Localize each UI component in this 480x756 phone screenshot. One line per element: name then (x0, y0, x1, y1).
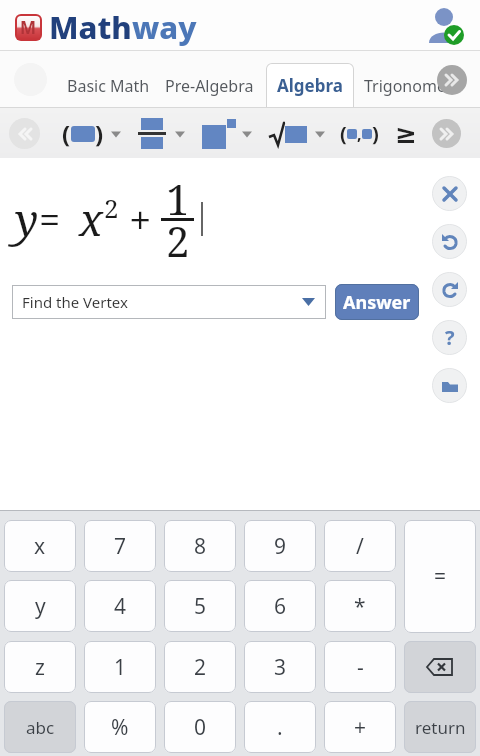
button[interactable]: 4 (84, 580, 156, 632)
staticText: y (35, 592, 46, 621)
staticText: 2 (104, 190, 119, 225)
button[interactable]: 7 (84, 520, 156, 572)
button[interactable] (432, 368, 467, 403)
button[interactable]: y (4, 580, 76, 632)
staticText: / (356, 532, 364, 561)
button[interactable]: / (324, 520, 396, 572)
button[interactable] (202, 119, 236, 149)
button[interactable] (404, 641, 476, 693)
button[interactable] (432, 224, 467, 259)
staticText: Basic Math (67, 75, 150, 97)
staticText: = (434, 562, 447, 591)
staticText: 5 (194, 592, 207, 621)
button[interactable]: = (404, 520, 476, 633)
staticText: Answer (343, 290, 411, 315)
staticText: x (79, 189, 104, 249)
button[interactable]: Find the Vertex (12, 285, 326, 319)
button[interactable]: - (324, 641, 396, 693)
staticText: y (15, 189, 39, 249)
staticText: . (277, 713, 283, 742)
button[interactable]: + (324, 701, 396, 753)
staticText: + (129, 192, 152, 246)
staticText: 2 (194, 653, 207, 682)
button[interactable]: 5 (164, 580, 236, 632)
staticText: z (35, 653, 45, 682)
button[interactable]: Pre-Algebra (165, 63, 254, 108)
staticText: 8 (194, 532, 207, 561)
staticText: Algebra (277, 74, 343, 97)
button[interactable]: 1 (84, 641, 156, 693)
staticText: Trigonometi (364, 75, 456, 97)
button[interactable] (269, 121, 307, 147)
staticText: ( (340, 120, 347, 147)
staticText: 4 (114, 592, 127, 621)
button[interactable]: x (4, 520, 76, 572)
button[interactable] (432, 272, 467, 307)
button[interactable] (138, 118, 166, 149)
staticText: way (132, 6, 197, 48)
staticText: ) (95, 117, 104, 150)
staticText: abc (26, 716, 55, 739)
staticText: M (20, 16, 37, 39)
staticText: ) (372, 120, 379, 147)
button[interactable]: M (15, 14, 42, 41)
button[interactable]: ≥ (395, 119, 417, 149)
staticText: 3 (274, 653, 287, 682)
staticText: return (415, 716, 466, 739)
staticText: Pre-Algebra (165, 75, 254, 97)
staticText: 0 (194, 713, 207, 742)
button[interactable]: Algebra (266, 63, 354, 108)
button[interactable]: Trigonometi (364, 63, 456, 108)
button[interactable]: z (4, 641, 76, 693)
staticText: 1 (166, 170, 190, 227)
staticText: % (111, 713, 129, 742)
staticText: * (354, 592, 366, 621)
staticText: 9 (274, 532, 287, 561)
button[interactable] (432, 119, 461, 148)
staticText: = (39, 193, 61, 245)
staticText: 6 (274, 592, 287, 621)
staticText: ? (445, 324, 455, 351)
button[interactable]: 0 (164, 701, 236, 753)
staticText: Math (49, 6, 132, 48)
button[interactable]: ? (432, 320, 467, 355)
button[interactable]: abc (4, 701, 76, 753)
staticText: Find the Vertex (22, 292, 128, 312)
button[interactable]: return (404, 701, 476, 753)
staticText: ( (62, 117, 71, 150)
staticText: + (354, 713, 367, 742)
staticText: x (34, 532, 46, 561)
staticText: - (357, 653, 364, 682)
button[interactable]: Answer (335, 284, 419, 320)
button[interactable]: 2 (164, 641, 236, 693)
staticText: , (357, 123, 362, 145)
button[interactable] (437, 65, 467, 95)
staticText: 2 (166, 212, 190, 269)
button[interactable]: ( (62, 117, 104, 150)
button[interactable]: ( (340, 120, 379, 147)
staticText: 7 (114, 532, 127, 561)
button[interactable]: Basic Math (67, 63, 150, 108)
button[interactable] (426, 5, 466, 45)
button[interactable]: 9 (244, 520, 316, 572)
button[interactable]: 6 (244, 580, 316, 632)
button[interactable]: * (324, 580, 396, 632)
staticText: 1 (114, 653, 127, 682)
button[interactable]: % (84, 701, 156, 753)
button[interactable]: . (244, 701, 316, 753)
button[interactable]: 8 (164, 520, 236, 572)
button[interactable]: 3 (244, 641, 316, 693)
button[interactable] (432, 176, 467, 211)
button[interactable] (9, 118, 40, 149)
